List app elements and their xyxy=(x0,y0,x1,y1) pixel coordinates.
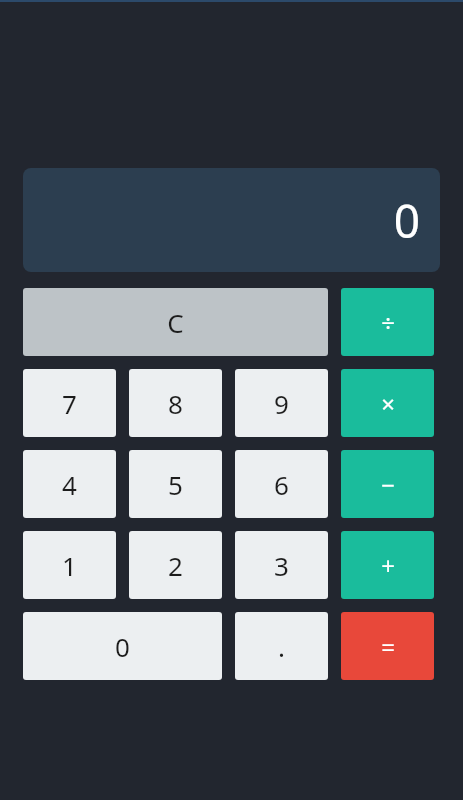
button[interactable]: × xyxy=(341,369,434,437)
button[interactable]: . xyxy=(235,612,328,680)
staticText: + xyxy=(381,549,395,582)
staticText: 4 xyxy=(62,467,77,502)
staticText: 2 xyxy=(168,548,183,583)
staticText: 3 xyxy=(274,548,289,583)
staticText: × xyxy=(381,387,395,420)
button[interactable]: 1 xyxy=(23,531,116,599)
button[interactable]: 6 xyxy=(235,450,328,518)
staticText: C xyxy=(167,305,184,340)
button[interactable]: 9 xyxy=(235,369,328,437)
staticText: = xyxy=(381,630,395,663)
button[interactable]: 5 xyxy=(129,450,222,518)
button[interactable]: = xyxy=(341,612,434,680)
button[interactable]: − xyxy=(341,450,434,518)
staticText: 7 xyxy=(62,386,77,421)
button[interactable]: 4 xyxy=(23,450,116,518)
button[interactable]: 7 xyxy=(23,369,116,437)
button[interactable]: 0 xyxy=(23,612,222,680)
staticText: . xyxy=(278,629,285,664)
staticText: 5 xyxy=(168,467,183,502)
staticText: 9 xyxy=(274,386,289,421)
button[interactable]: + xyxy=(341,531,434,599)
staticText: 0 xyxy=(115,629,130,664)
button[interactable]: 2 xyxy=(129,531,222,599)
staticText: 8 xyxy=(168,386,183,421)
staticText: 0 xyxy=(393,189,420,252)
staticText: − xyxy=(381,468,395,501)
staticText: 6 xyxy=(274,467,289,502)
button[interactable]: 8 xyxy=(129,369,222,437)
button[interactable]: 0 xyxy=(23,168,440,272)
staticText: 1 xyxy=(62,548,77,583)
button[interactable]: C xyxy=(23,288,328,356)
staticText: ÷ xyxy=(381,306,395,339)
button[interactable]: 3 xyxy=(235,531,328,599)
button[interactable]: ÷ xyxy=(341,288,434,356)
